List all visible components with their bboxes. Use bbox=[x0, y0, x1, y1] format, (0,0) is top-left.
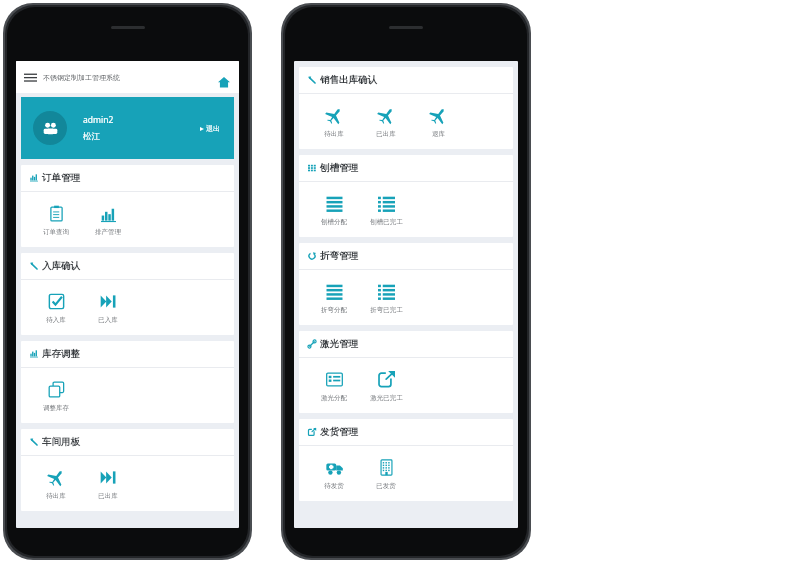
button[interactable]: 退库 bbox=[430, 105, 447, 140]
staticText: 激光管理 bbox=[320, 338, 358, 350]
button[interactable]: 已入库 bbox=[98, 291, 118, 326]
button[interactable]: Home bbox=[218, 76, 230, 88]
button[interactable]: 刨槽管理 bbox=[299, 155, 513, 181]
staticText: 订单管理 bbox=[42, 172, 80, 184]
button[interactable]: 调整库存 bbox=[43, 379, 69, 414]
button[interactable]: 销售出库确认 bbox=[299, 67, 513, 93]
staticText: 折弯管理 bbox=[320, 250, 358, 262]
staticText: admin2 bbox=[83, 114, 114, 126]
staticText: 车间用板 bbox=[42, 436, 80, 448]
button[interactable]: 库存调整 bbox=[21, 341, 234, 367]
staticText: 发货管理 bbox=[320, 426, 358, 438]
button[interactable]: Menu bbox=[24, 71, 37, 84]
button[interactable]: 待出库 bbox=[324, 105, 344, 140]
staticText: 刨槽管理 bbox=[320, 162, 358, 174]
button[interactable]: 刨槽已完工 bbox=[370, 193, 403, 228]
staticText: 折弯已完工 bbox=[370, 306, 403, 314]
staticText: 待出库 bbox=[46, 492, 66, 500]
button[interactable]: admin2 bbox=[21, 97, 234, 159]
staticText: 松江 bbox=[83, 131, 100, 142]
staticText: 退库 bbox=[432, 130, 445, 138]
staticText: 待发货 bbox=[324, 482, 344, 490]
staticText: 待出库 bbox=[324, 130, 344, 138]
button[interactable]: 已发货 bbox=[376, 457, 396, 492]
staticText: 刨槽分配 bbox=[321, 218, 347, 226]
button[interactable]: 已出库 bbox=[98, 467, 118, 502]
button[interactable]: 激光分配 bbox=[321, 369, 347, 404]
staticText: 调整库存 bbox=[43, 404, 69, 412]
button[interactable]: 发货管理 bbox=[299, 419, 513, 445]
staticText: 折弯分配 bbox=[321, 306, 347, 314]
button[interactable]: 待出库 bbox=[46, 467, 66, 502]
button[interactable]: 折弯管理 bbox=[299, 243, 513, 269]
staticText: 排产管理 bbox=[95, 228, 121, 236]
button[interactable]: 待入库 bbox=[46, 291, 66, 326]
staticText: 退出 bbox=[206, 124, 220, 133]
staticText: 已入库 bbox=[98, 316, 118, 324]
button[interactable]: 退出 bbox=[200, 124, 234, 133]
button[interactable]: 折弯已完工 bbox=[370, 281, 403, 316]
button[interactable]: 激光已完工 bbox=[370, 369, 403, 404]
button[interactable]: 车间用板 bbox=[21, 429, 234, 455]
staticText: 激光已完工 bbox=[370, 394, 403, 402]
button[interactable]: 已出库 bbox=[376, 105, 396, 140]
button[interactable]: 待发货 bbox=[324, 457, 344, 492]
staticText: 销售出库确认 bbox=[320, 74, 377, 86]
staticText: 订单查询 bbox=[43, 228, 69, 236]
button[interactable]: 刨槽分配 bbox=[321, 193, 347, 228]
staticText: 已发货 bbox=[376, 482, 396, 490]
button[interactable]: 激光管理 bbox=[299, 331, 513, 357]
staticText: 入库确认 bbox=[42, 260, 80, 272]
staticText: 不锈钢定制加工管理系统 bbox=[43, 73, 120, 82]
staticText: 库存调整 bbox=[42, 348, 80, 360]
staticText: 刨槽已完工 bbox=[370, 218, 403, 226]
staticText: 已出库 bbox=[376, 130, 396, 138]
button[interactable]: 订单查询 bbox=[43, 203, 69, 238]
button[interactable]: 折弯分配 bbox=[321, 281, 347, 316]
staticText: 已出库 bbox=[98, 492, 118, 500]
staticText: 待入库 bbox=[46, 316, 66, 324]
button[interactable]: 排产管理 bbox=[95, 203, 121, 238]
staticText: 激光分配 bbox=[321, 394, 347, 402]
button[interactable]: 入库确认 bbox=[21, 253, 234, 279]
button[interactable]: 订单管理 bbox=[21, 165, 234, 191]
